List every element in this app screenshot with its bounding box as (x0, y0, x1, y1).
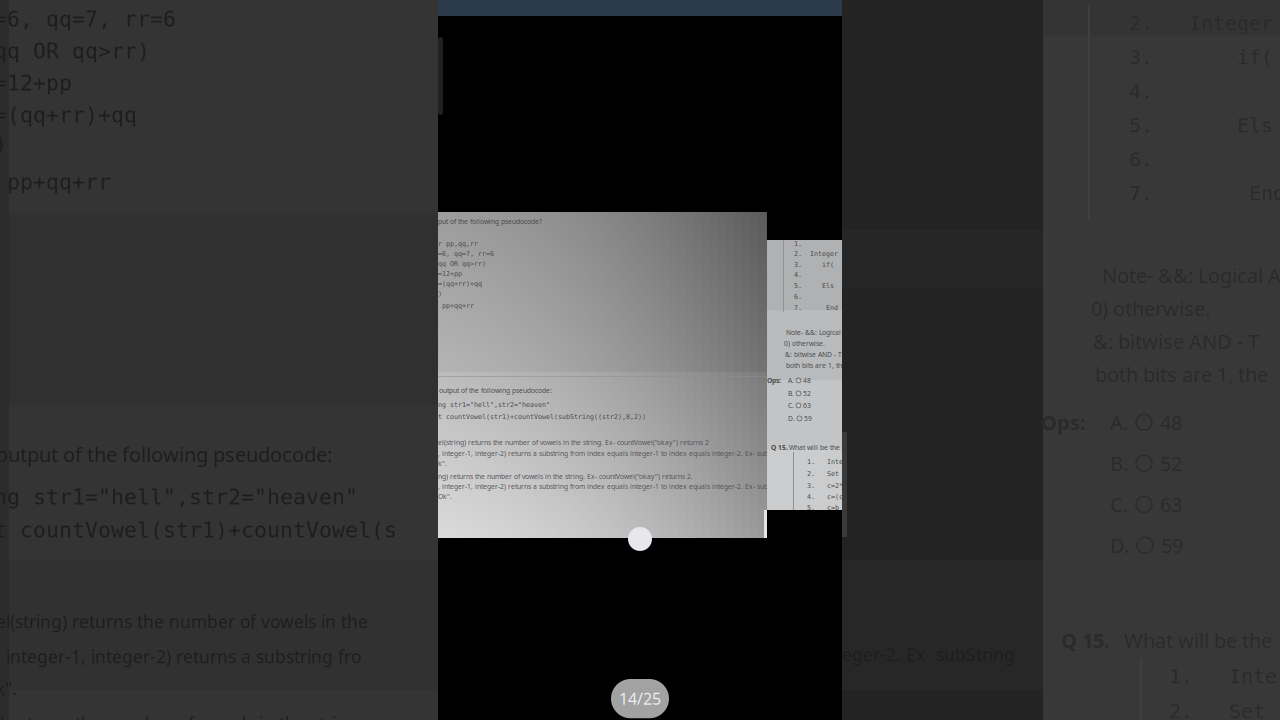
staticText: 1. Inte (807, 458, 843, 466)
staticText: 6. (1129, 148, 1153, 171)
staticText: 2. Set (1169, 700, 1265, 720)
staticText: =6, qq=7, rr=6 (438, 250, 494, 258)
staticText: Ok". (438, 492, 452, 501)
staticText: put of the following pseudocode? (438, 217, 542, 226)
staticText: &: bitwise AND - T (785, 350, 842, 359)
staticText: ng str1="hell",str2="heaven" (438, 401, 550, 409)
staticText: C. (1110, 491, 1128, 518)
staticText: 3. if( (794, 261, 834, 269)
staticText: 6. (794, 293, 802, 301)
staticText: B. (1110, 450, 1128, 477)
staticText: 14/25 (619, 688, 661, 709)
staticText: 0) otherwise. (784, 339, 825, 348)
staticText: 4. (794, 271, 802, 279)
staticText: pp+qq+rr (438, 302, 474, 310)
staticText: A. (1110, 409, 1128, 436)
staticText: , integer-1, integer-2) returns a substr… (438, 449, 783, 458)
staticText: ng) returns the number of vowels in the … (438, 472, 693, 481)
staticText: ) (438, 290, 442, 298)
staticText: qq OR qq>rr) (0, 39, 150, 63)
staticText: What will be the (1124, 627, 1272, 654)
staticText: teger-2. Ex- subString (836, 643, 1015, 666)
staticText: =6, qq=7, rr=6 (0, 7, 176, 31)
staticText: k". (438, 459, 447, 468)
staticText: Q 15. (771, 443, 788, 452)
staticText: both bits are 1, the (786, 361, 846, 370)
staticText: =(qq+rr)+qq (0, 103, 137, 127)
staticText: 2. Integer (794, 250, 838, 258)
staticText: both bits are 1, the (1095, 361, 1268, 388)
staticText: pp+qq+rr (0, 170, 111, 194)
staticText: &: bitwise AND - T (1093, 328, 1259, 355)
button[interactable]: 14/25 (611, 679, 669, 718)
staticText: ) (0, 132, 7, 156)
staticText: 2. Set (807, 470, 839, 478)
staticText: Note- &&: Logical A (1102, 262, 1280, 289)
staticText: 52 (1160, 450, 1182, 477)
staticText: 59 (1161, 532, 1183, 559)
staticText: 52 (803, 389, 811, 398)
staticText: output of the following pseudocode: (0, 441, 332, 468)
staticText: ng str1="hell",str2="heaven" (0, 485, 358, 509)
staticText: r pp,qq,rr (438, 240, 478, 248)
staticText: 63 (803, 401, 811, 410)
staticText: 48 (1160, 409, 1182, 436)
staticText: D. (788, 414, 795, 423)
staticText: , integer-1, integer-2) returns a substr… (0, 645, 361, 668)
staticText: 5. Els (794, 282, 834, 290)
staticText: 3. c=2* (807, 482, 843, 490)
staticText: Ops: (767, 376, 781, 385)
staticText: Q 15. (1061, 627, 1110, 654)
staticText: el(string) returns the number of vowels … (0, 610, 368, 633)
staticText: 63 (1160, 491, 1182, 518)
staticText: B. (788, 389, 794, 398)
staticText: 5. c=b (807, 504, 839, 512)
staticText: What will be the (789, 443, 840, 452)
staticText: el(string) returns the number of vowels … (438, 438, 709, 447)
staticText: , integer-1, integer-2) returns a substr… (438, 482, 779, 491)
staticText: output of the following pseudocode: (439, 386, 552, 395)
staticText: 4. (1129, 80, 1153, 103)
staticText: =12+pp (438, 270, 462, 278)
staticText: 4. c=(c (807, 493, 843, 501)
staticText: Ops: (1041, 409, 1086, 436)
staticText: Note- &&: Logical A (786, 328, 847, 337)
staticText: 59 (804, 414, 812, 423)
staticText: 0) otherwise. (1091, 295, 1210, 322)
staticText: 48 (803, 376, 811, 385)
staticText: t countVowel(str1)+countVowel(s (0, 518, 397, 542)
staticText: =12+pp (0, 71, 72, 95)
staticText: 1. (794, 240, 802, 248)
staticText: 1. Inte (1169, 665, 1277, 688)
staticText: A. (788, 376, 794, 385)
staticText: t countVowel(str1)+countVowel(subString(… (438, 413, 646, 421)
staticText: D. (1110, 532, 1129, 559)
staticText: C. (788, 401, 794, 410)
staticText: qq OR qq>rr) (438, 260, 486, 268)
staticText: 7. End (794, 304, 838, 312)
staticText: =(qq+rr)+qq (438, 280, 482, 288)
staticText: k". (0, 677, 17, 700)
